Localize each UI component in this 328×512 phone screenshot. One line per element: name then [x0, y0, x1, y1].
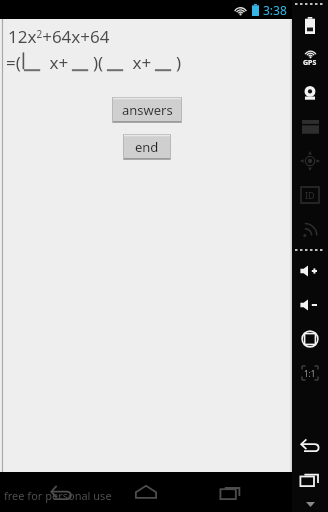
- staticText: x+: [45, 51, 69, 74]
- staticText: x+: [128, 51, 152, 74]
- button[interactable]: Emulator control: [292, 76, 328, 110]
- button[interactable]: More: [292, 496, 328, 512]
- button[interactable]: Home: [122, 474, 170, 510]
- button[interactable]: Emulator control: [292, 212, 328, 246]
- button[interactable]: Emulator control: [292, 8, 328, 42]
- staticText: ): [176, 51, 182, 74]
- button[interactable]: blank field: [152, 51, 176, 75]
- button[interactable]: Emulator control: [292, 462, 328, 496]
- button[interactable]: Emulator control: [292, 288, 328, 322]
- staticText: 12x2+64x+64: [8, 25, 110, 48]
- button[interactable]: blank field: [21, 51, 45, 75]
- staticText: ID: [305, 189, 315, 201]
- button[interactable]: answers: [112, 97, 182, 123]
- button[interactable]: Emulator control: [292, 428, 328, 462]
- staticText: end: [135, 138, 159, 156]
- button[interactable]: Emulator control: [292, 322, 328, 356]
- button[interactable]: end: [123, 134, 171, 160]
- button[interactable]: Emulator control: [292, 110, 328, 144]
- button[interactable]: Recent apps: [207, 474, 255, 510]
- staticText: 3:38: [263, 2, 287, 18]
- button[interactable]: Emulator control: [292, 144, 328, 178]
- button[interactable]: Emulator control: [292, 42, 328, 76]
- staticText: )(: [93, 51, 104, 74]
- staticText: free for personal use: [4, 488, 112, 503]
- button[interactable]: Back: [37, 474, 85, 510]
- staticText: =(: [6, 51, 21, 74]
- staticText: GPS: [303, 58, 317, 68]
- button[interactable]: Emulator control: [292, 356, 328, 390]
- button[interactable]: blank field: [69, 51, 93, 75]
- staticText: 1:1: [304, 368, 316, 379]
- button[interactable]: blank field: [104, 51, 128, 75]
- button[interactable]: Emulator control: [292, 254, 328, 288]
- staticText: answers: [122, 101, 173, 119]
- button[interactable]: Emulator control: [292, 178, 328, 212]
